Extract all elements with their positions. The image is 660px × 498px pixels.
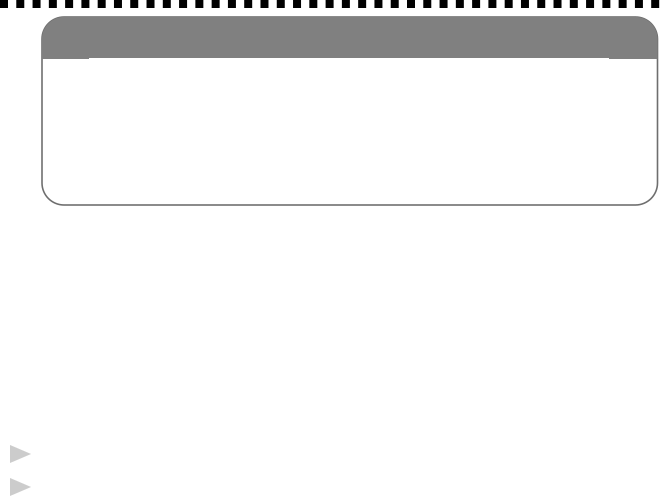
button[interactable]: More (609, 17, 657, 59)
button[interactable]: Expand section (10, 445, 31, 463)
button[interactable]: Back (42, 17, 89, 59)
button[interactable]: Expand section (10, 478, 31, 496)
